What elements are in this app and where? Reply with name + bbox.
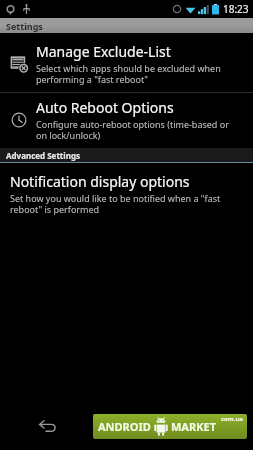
staticText: Manage Exclude-List xyxy=(36,42,171,61)
button[interactable]: Back xyxy=(36,414,60,438)
staticText: Set how you would like to be notified wh… xyxy=(10,192,221,216)
staticText: Select which apps should be excluded whe… xyxy=(36,62,221,86)
staticText: Auto Reboot Options xyxy=(36,98,174,117)
staticText: ANDROID xyxy=(98,419,151,434)
staticText: 18:23 xyxy=(223,2,249,16)
staticText: Configure auto-reboot options (time-base… xyxy=(36,118,229,142)
button[interactable]: Manage Exclude-List xyxy=(0,37,253,92)
staticText: Notification display options xyxy=(10,172,190,191)
staticText: Settings xyxy=(6,20,43,32)
button[interactable]: Notification display options xyxy=(0,167,253,222)
button[interactable]: Auto Reboot Options xyxy=(0,93,253,148)
staticText: Advanced Settings xyxy=(6,150,80,161)
staticText: MARKET xyxy=(171,419,217,434)
staticText: com.ua xyxy=(221,415,243,423)
